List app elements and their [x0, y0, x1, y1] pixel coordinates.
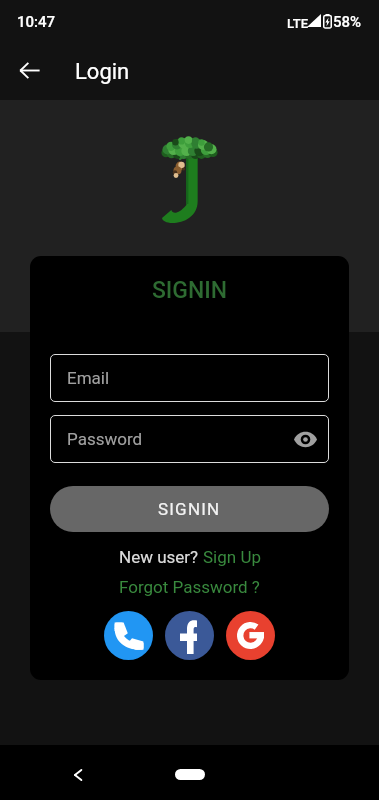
- button[interactable]: Sign in with Google: [226, 611, 275, 660]
- staticText: Forgot Password ?: [119, 577, 260, 597]
- button[interactable]: Back: [13, 54, 45, 86]
- staticText: Sign Up: [203, 547, 261, 567]
- button[interactable]: Forgot Password ?: [119, 577, 260, 597]
- button[interactable]: Show password: [292, 426, 318, 452]
- button[interactable]: Home: [175, 769, 205, 780]
- button[interactable]: Sign in with Facebook: [165, 611, 214, 660]
- button[interactable]: Email: [50, 354, 329, 402]
- staticText: LTE: [287, 16, 308, 31]
- staticText: Email: [67, 368, 110, 388]
- staticText: New user?: [119, 547, 203, 567]
- staticText: SIGNIN: [158, 499, 221, 519]
- staticText: Password: [67, 429, 143, 449]
- staticText: 58%: [333, 13, 362, 31]
- button[interactable]: Sign Up: [203, 547, 261, 567]
- staticText: 10:47: [17, 13, 56, 31]
- button[interactable]: SIGNIN: [50, 486, 329, 532]
- staticText: SIGNIN: [30, 277, 349, 304]
- staticText: Login: [75, 59, 130, 85]
- button[interactable]: Back: [62, 759, 94, 791]
- button[interactable]: Sign in with phone: [104, 611, 153, 660]
- button[interactable]: Password: [50, 415, 329, 463]
